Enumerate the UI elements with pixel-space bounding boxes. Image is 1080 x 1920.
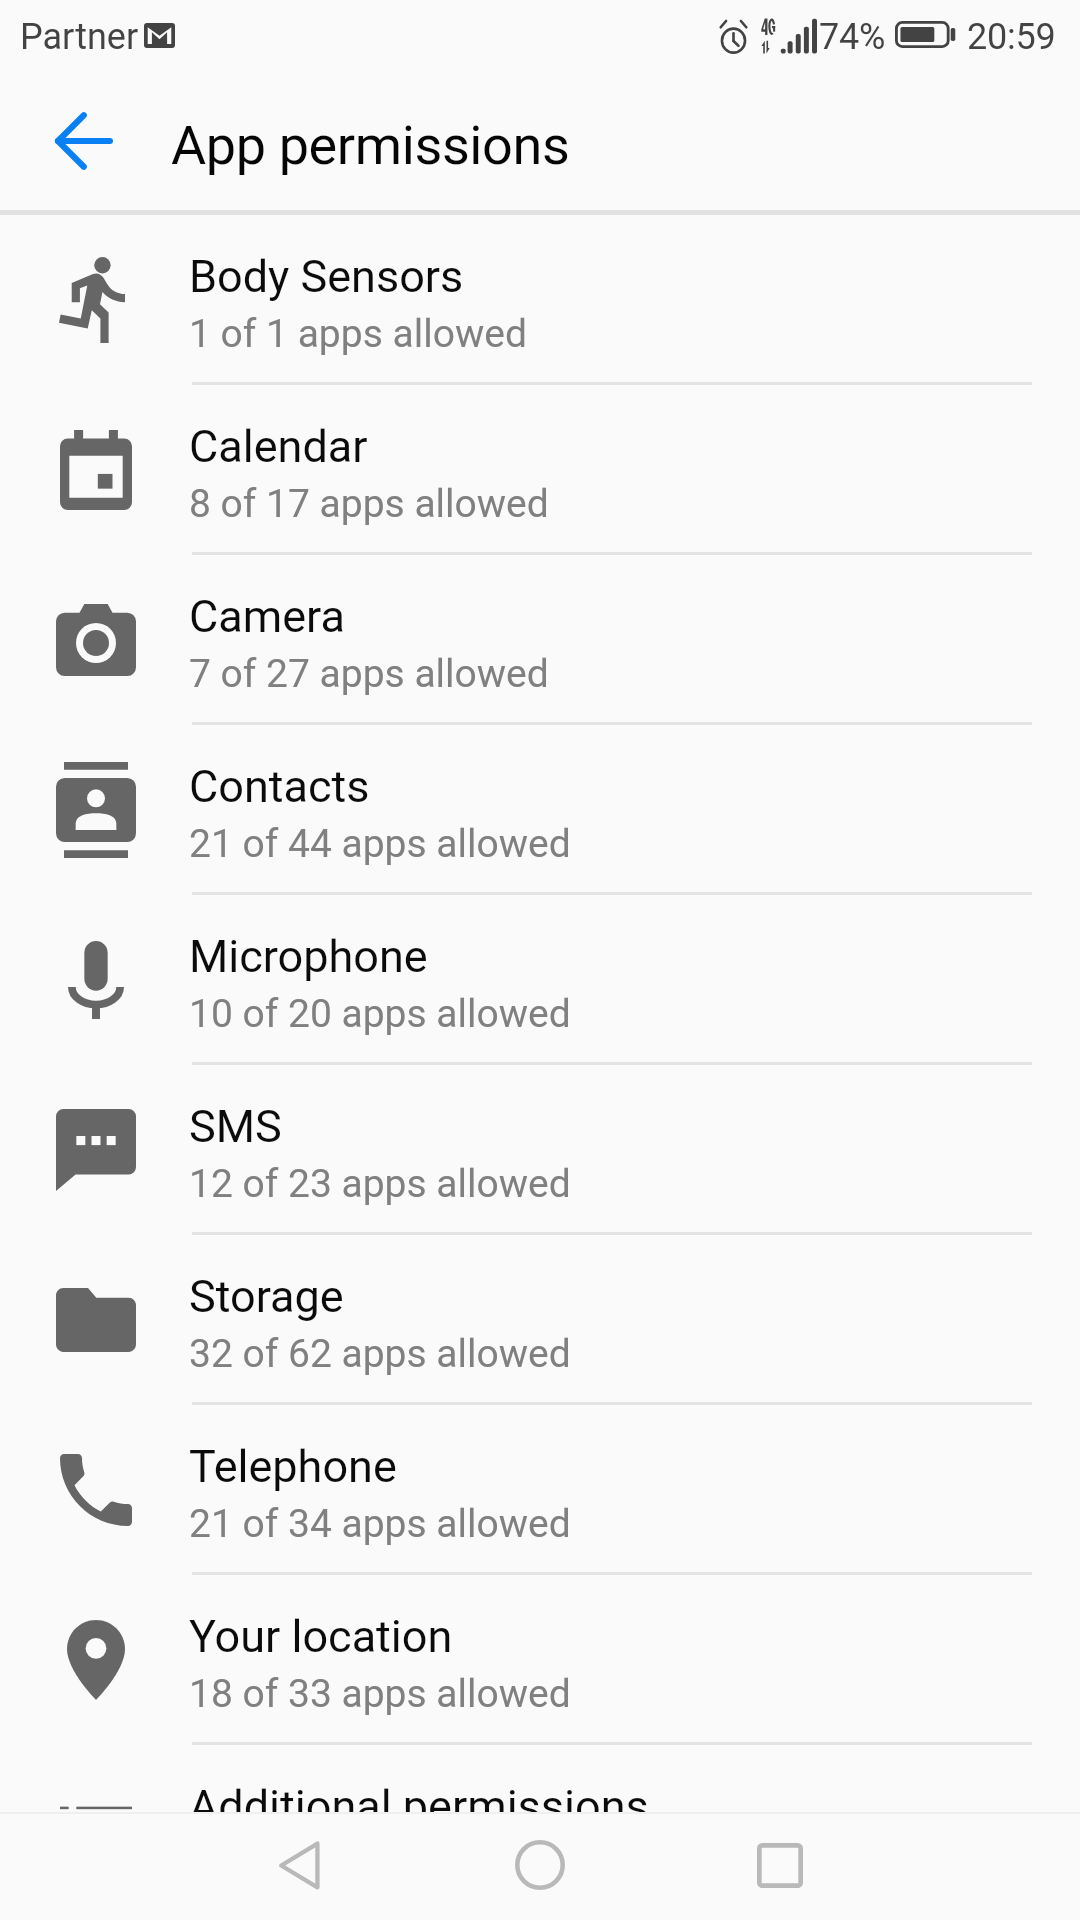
staticText: 10 of 20 apps allowed	[189, 991, 571, 1037]
staticText: 18 of 33 apps allowed	[189, 1671, 571, 1717]
button[interactable]: Microphone	[0, 895, 1080, 1065]
staticText: Contacts	[189, 760, 370, 813]
staticText: 20:59	[967, 16, 1056, 58]
staticText: 12 of 23 apps allowed	[189, 1161, 571, 1207]
staticText: 7 of 27 apps allowed	[189, 651, 549, 697]
staticText: App permissions	[171, 114, 570, 177]
button[interactable]: Additional permissions	[0, 1745, 1080, 1812]
staticText: Storage	[189, 1270, 344, 1323]
button[interactable]: Home	[459, 1812, 1080, 1920]
button[interactable]: Recent apps	[699, 1812, 1080, 1920]
staticText: Telephone	[189, 1440, 397, 1493]
staticText: 8 of 17 apps allowed	[189, 481, 549, 527]
staticText: Body Sensors	[189, 250, 464, 303]
button[interactable]: Storage	[0, 1235, 1080, 1405]
staticText: Calendar	[189, 420, 368, 473]
staticText: SMS	[189, 1100, 282, 1153]
button[interactable]: Calendar	[0, 385, 1080, 555]
button[interactable]: Contacts	[0, 725, 1080, 895]
staticText: Camera	[189, 590, 345, 643]
button[interactable]: Your location	[0, 1575, 1080, 1745]
button[interactable]: Back	[218, 1812, 1080, 1920]
staticText: 32 of 62 apps allowed	[189, 1331, 571, 1377]
staticText: 1 of 1 apps allowed	[189, 311, 527, 357]
button[interactable]: SMS	[0, 1065, 1080, 1235]
staticText: Partner	[20, 16, 139, 58]
staticText: 74%	[819, 16, 886, 58]
button[interactable]: Camera	[0, 555, 1080, 725]
staticText: Additional permissions	[189, 1780, 649, 1812]
staticText: 21 of 44 apps allowed	[189, 821, 571, 867]
staticText: Your location	[189, 1610, 453, 1663]
staticText: Microphone	[189, 930, 428, 983]
button[interactable]: Navigate up	[40, 97, 128, 185]
staticText: 21 of 34 apps allowed	[189, 1501, 571, 1547]
button[interactable]: Body Sensors	[0, 215, 1080, 385]
button[interactable]: Telephone	[0, 1405, 1080, 1575]
